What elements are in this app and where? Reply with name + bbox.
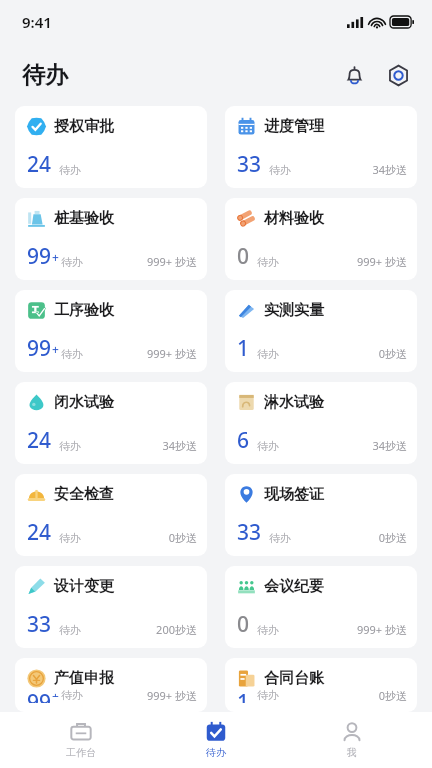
staticText: 34抄送 [162, 438, 197, 453]
button[interactable]: 淋水试验 [225, 382, 417, 464]
staticText: 待办 [61, 688, 83, 701]
staticText: 99 [27, 334, 52, 363]
staticText: 34抄送 [372, 438, 407, 453]
staticText: 33 [237, 150, 262, 179]
staticText: 6 [237, 426, 250, 455]
staticText: 待办 [257, 688, 279, 701]
staticText: 待办 [269, 531, 291, 545]
staticText: 待办 [61, 347, 83, 361]
staticText: 99 [27, 688, 52, 703]
staticText: 授权审批 [54, 117, 114, 136]
staticText: 24 [27, 426, 52, 455]
button[interactable]: 我 [297, 712, 407, 768]
button[interactable]: 安全检查 [15, 474, 207, 556]
staticText: 33 [27, 610, 52, 639]
staticText: 会议纪要 [264, 577, 324, 596]
button[interactable]: 材料验收 [225, 198, 417, 280]
staticText: 实测实量 [264, 301, 324, 320]
staticText: 闭水试验 [54, 393, 114, 412]
staticText: 999+ 抄送 [356, 622, 407, 637]
button[interactable]: 设计变更 [15, 566, 207, 648]
staticText: 材料验收 [264, 209, 324, 228]
button[interactable]: 产值申报 [15, 658, 207, 712]
staticText: 0 [237, 610, 250, 639]
staticText: 0抄送 [168, 530, 197, 545]
staticText: 999+ 抄送 [146, 254, 197, 269]
button[interactable]: 会议纪要 [225, 566, 417, 648]
staticText: 待办 [257, 623, 279, 637]
staticText: 200抄送 [156, 622, 197, 637]
staticText: 1 [237, 334, 250, 363]
staticText: 0抄送 [378, 346, 407, 361]
button[interactable]: 工序验收 [15, 290, 207, 372]
staticText: 999+ 抄送 [146, 346, 197, 361]
button[interactable]: 实测实量 [225, 290, 417, 372]
button[interactable]: 工作台 [26, 712, 136, 768]
staticText: 工作台 [66, 746, 96, 759]
button[interactable]: 待办 [161, 712, 271, 768]
staticText: 待办 [61, 255, 83, 269]
staticText: 待办 [59, 531, 81, 545]
staticText: 我 [347, 746, 357, 759]
button[interactable]: Notifications [338, 59, 370, 91]
staticText: 待办 [59, 163, 81, 177]
button[interactable]: 闭水试验 [15, 382, 207, 464]
staticText: 0抄送 [378, 530, 407, 545]
staticText: + [52, 249, 59, 265]
staticText: 0 [237, 242, 250, 271]
button[interactable]: Settings [382, 59, 414, 91]
staticText: 待办 [257, 255, 279, 269]
staticText: 999+ 抄送 [146, 688, 197, 701]
staticText: 待办 [59, 439, 81, 453]
staticText: 待办 [269, 163, 291, 177]
staticText: 桩基验收 [54, 209, 114, 228]
staticText: 合同台账 [264, 669, 324, 688]
button[interactable]: 桩基验收 [15, 198, 207, 280]
staticText: 待办 [257, 439, 279, 453]
staticText: 待办 [206, 746, 226, 759]
button[interactable]: 合同台账 [225, 658, 417, 712]
staticText: 待办 [59, 623, 81, 637]
staticText: 33 [237, 518, 262, 547]
staticText: 工序验收 [54, 301, 114, 320]
staticText: 1 [237, 688, 250, 703]
staticText: 999+ 抄送 [356, 254, 407, 269]
staticText: 待办 [22, 61, 68, 90]
staticText: 进度管理 [264, 117, 324, 136]
button[interactable]: 授权审批 [15, 106, 207, 188]
staticText: 0抄送 [378, 688, 407, 701]
staticText: 安全检查 [54, 485, 114, 504]
button[interactable]: 现场签证 [225, 474, 417, 556]
staticText: 9:41 [22, 12, 52, 32]
staticText: 淋水试验 [264, 393, 324, 412]
staticText: 产值申报 [54, 669, 114, 688]
staticText: 设计变更 [54, 577, 114, 596]
staticText: 待办 [257, 347, 279, 361]
staticText: + [52, 688, 59, 697]
staticText: 24 [27, 150, 52, 179]
staticText: 现场签证 [264, 485, 324, 504]
button[interactable]: 进度管理 [225, 106, 417, 188]
staticText: + [52, 341, 59, 357]
staticText: 34抄送 [372, 162, 407, 177]
staticText: 99 [27, 242, 52, 271]
staticText: 24 [27, 518, 52, 547]
